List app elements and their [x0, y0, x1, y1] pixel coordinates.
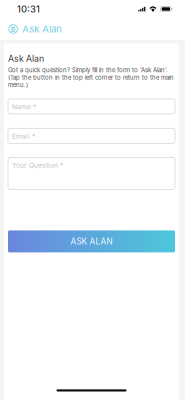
button[interactable]: Menu	[0, 19, 68, 39]
button[interactable]: Name *	[8, 99, 175, 114]
staticText: Email *	[12, 132, 35, 140]
staticText: 10:31	[17, 3, 40, 15]
staticText: (Tap the button in the top left corner t…	[8, 74, 174, 81]
button[interactable]: Email *	[8, 128, 175, 143]
staticText: menu.)	[8, 81, 28, 88]
staticText: Ask Alan	[22, 23, 62, 35]
button[interactable]: ASK ALAN	[8, 230, 175, 252]
button[interactable]: Your Question *	[8, 157, 175, 189]
staticText: Got a quick question? Simply fill in the…	[8, 66, 168, 74]
staticText: Your Question *	[12, 161, 63, 169]
staticText: ASK ALAN	[70, 236, 112, 246]
staticText: Ask Alan	[8, 53, 44, 64]
staticText: Name *	[12, 103, 36, 111]
